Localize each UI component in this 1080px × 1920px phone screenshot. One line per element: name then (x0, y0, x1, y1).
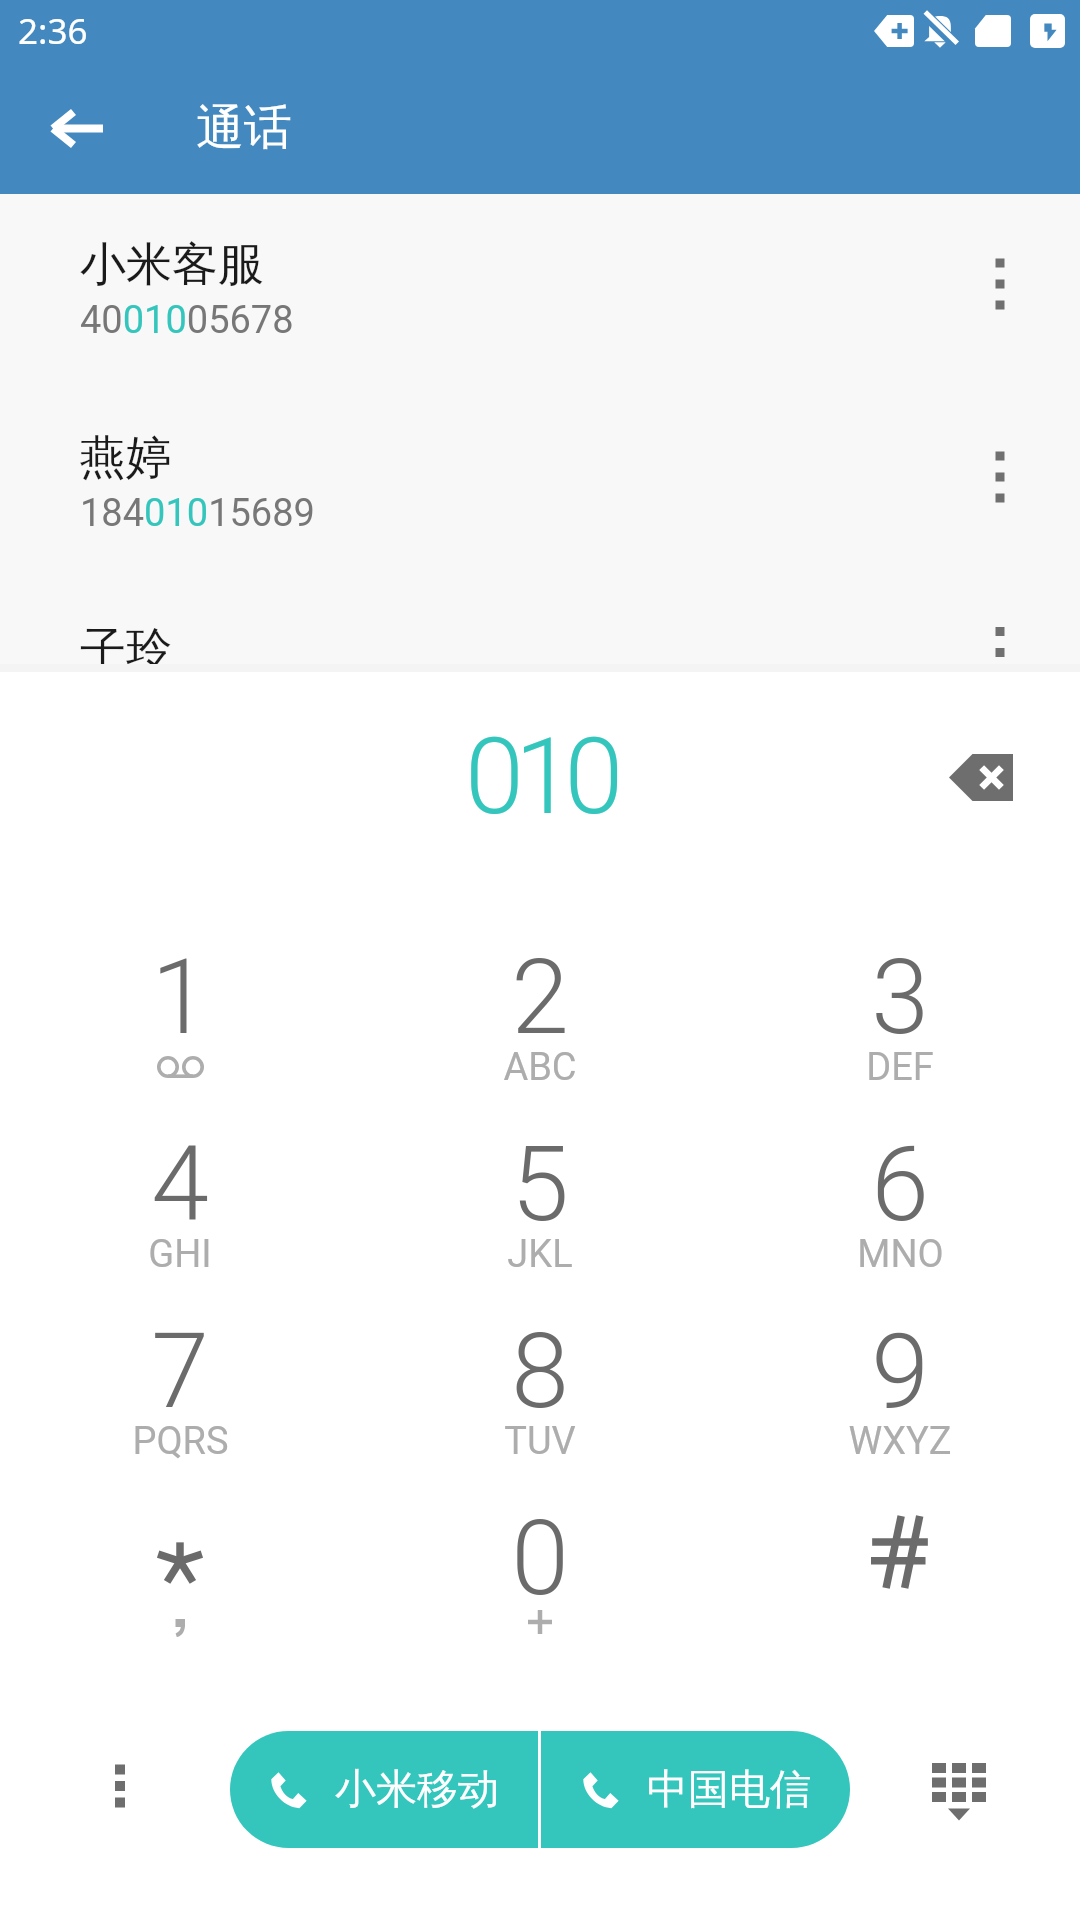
staticText: ABC (503, 1045, 577, 1090)
button[interactable]: Backspace (916, 722, 1046, 832)
staticText: 子玲 (80, 621, 172, 672)
staticText: 1 (151, 937, 209, 1059)
button[interactable]: 小米客服 (0, 194, 1080, 380)
button[interactable]: 中国电信 (541, 1731, 850, 1848)
staticText: GHI (148, 1232, 212, 1277)
staticText: 9 (871, 1311, 929, 1433)
button[interactable]: 8 (360, 1300, 720, 1487)
staticText: WXYZ (848, 1419, 952, 1464)
button[interactable]: 燕婷 (0, 387, 1080, 577)
staticText: 小米客服 (80, 236, 264, 294)
staticText: 4001005678 (80, 298, 294, 343)
button[interactable]: 6 (720, 1113, 1080, 1300)
staticText: 7 (151, 1311, 209, 1433)
staticText: 3 (871, 937, 929, 1059)
staticText: 8 (511, 1311, 569, 1433)
button[interactable]: 7 (0, 1300, 360, 1487)
staticText: 4 (151, 1124, 209, 1246)
button[interactable]: 1 (0, 926, 360, 1113)
button[interactable]: 2 (360, 926, 720, 1113)
button[interactable]: 小米移动 (230, 1731, 538, 1848)
staticText: 0 (511, 1498, 569, 1620)
staticText: MNO (857, 1232, 944, 1277)
staticText: 2 (511, 937, 569, 1059)
button[interactable]: Back (44, 93, 112, 163)
staticText: 中国电信 (647, 1764, 811, 1816)
button[interactable]: 子玲 (0, 579, 1080, 672)
staticText: 010 (465, 715, 615, 839)
staticText: 5 (511, 1124, 569, 1246)
staticText: JKL (507, 1232, 573, 1277)
button[interactable]: 5 (360, 1113, 720, 1300)
button[interactable]: Hide keypad (917, 1749, 1001, 1833)
staticText: 通话 (196, 98, 292, 158)
button[interactable]: 3 (720, 926, 1080, 1113)
button[interactable] (0, 1487, 360, 1674)
button[interactable]: 9 (720, 1300, 1080, 1487)
staticText: 6 (871, 1124, 929, 1246)
staticText: 燕婷 (80, 429, 172, 487)
button[interactable]: More options (964, 248, 1036, 320)
button[interactable]: More options (964, 441, 1036, 513)
staticText: PQRS (132, 1419, 229, 1464)
button[interactable]: More (82, 1748, 158, 1824)
button[interactable]: 4 (0, 1113, 360, 1300)
button[interactable] (720, 1487, 1080, 1674)
staticText: 小米移动 (335, 1764, 499, 1816)
staticText: TUV (504, 1419, 576, 1464)
staticText: DEF (866, 1045, 934, 1090)
staticText: 2:36 (18, 7, 88, 55)
button[interactable]: More options (964, 633, 1036, 672)
button[interactable]: 0 (360, 1487, 720, 1674)
staticText: 18401015689 (80, 491, 315, 536)
